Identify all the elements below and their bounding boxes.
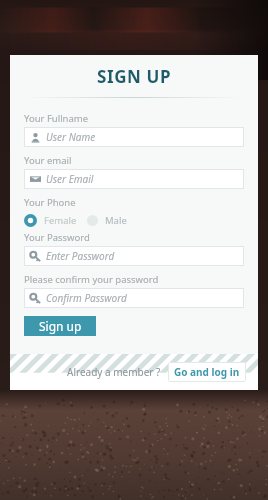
button[interactable]: Go and log in [168,362,246,382]
staticText: User Email [46,172,94,186]
button[interactable]: Male [87,214,127,227]
button[interactable]: Female [24,214,77,227]
staticText: Your email [24,154,72,167]
staticText: Your Password [24,231,90,244]
staticText: Female [44,214,77,227]
staticText: Already a member ? [67,365,161,379]
staticText: Confirm Password [46,291,127,305]
staticText: Enter Password [46,249,115,263]
other: Password [30,251,41,262]
staticText: Your Fullname [24,112,89,125]
button[interactable]: Password [24,288,244,308]
staticText: Sign up [39,318,82,334]
staticText: Please confirm your password [24,273,159,286]
staticText: User Name [46,130,96,144]
button[interactable]: Password [24,246,244,266]
staticText: Your Phone [24,196,76,209]
other: Email [30,174,41,185]
staticText: Go and log in [174,365,240,379]
button[interactable]: Sign up [24,316,96,336]
other: Password [30,293,41,304]
button[interactable]: Email [24,169,244,189]
other: Name [30,132,41,143]
staticText: SIGN UP [97,65,172,88]
button[interactable]: Name [24,127,244,147]
staticText: Male [105,214,127,227]
